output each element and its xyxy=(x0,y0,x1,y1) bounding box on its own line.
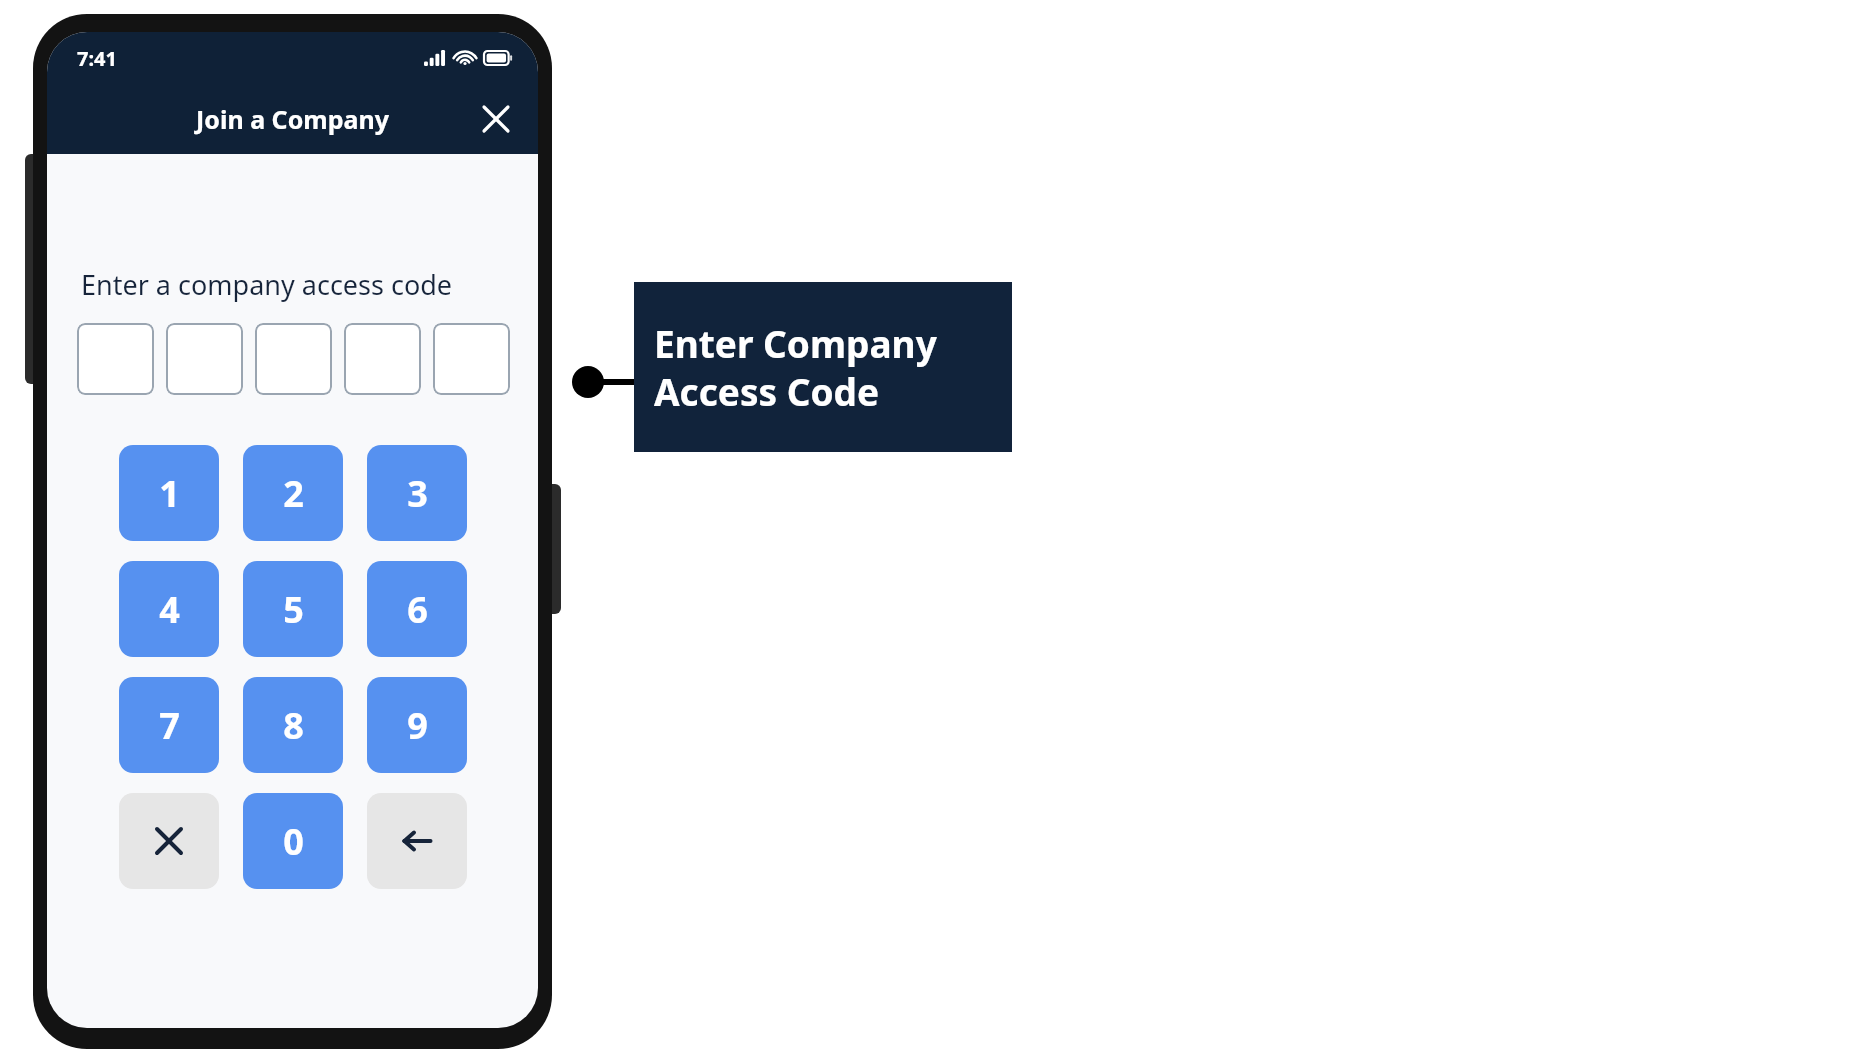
button[interactable]: 5 xyxy=(243,561,343,657)
button[interactable]: 4 xyxy=(119,561,219,657)
button[interactable]: Clear xyxy=(119,793,219,889)
button[interactable]: 3 xyxy=(367,445,467,541)
staticText: 5 xyxy=(283,585,304,634)
staticText: 0 xyxy=(283,817,304,866)
button[interactable]: Code digit 3 xyxy=(255,323,332,395)
staticText: 8 xyxy=(283,701,304,750)
button[interactable]: 2 xyxy=(243,445,343,541)
button[interactable]: 7 xyxy=(119,677,219,773)
staticText: 7 xyxy=(159,701,180,750)
staticText: 4 xyxy=(159,585,180,634)
staticText: 6 xyxy=(407,585,428,634)
staticText: 7:41 xyxy=(77,45,117,72)
button[interactable]: Code digit 5 xyxy=(433,323,510,395)
button[interactable]: 1 xyxy=(119,445,219,541)
button[interactable]: Code digit 4 xyxy=(344,323,421,395)
button[interactable]: Code digit 2 xyxy=(166,323,243,395)
button[interactable]: Backspace xyxy=(367,793,467,889)
staticText: Join a Company xyxy=(196,102,389,136)
staticText: Enter Company Access Code xyxy=(654,318,937,417)
button[interactable]: 9 xyxy=(367,677,467,773)
staticText: 9 xyxy=(407,701,428,750)
button[interactable]: 6 xyxy=(367,561,467,657)
button[interactable]: Code digit 1 xyxy=(77,323,154,395)
staticText: 3 xyxy=(407,469,428,518)
button[interactable]: 8 xyxy=(243,677,343,773)
button[interactable]: 0 xyxy=(243,793,343,889)
button[interactable]: Close xyxy=(474,97,518,141)
staticText: 1 xyxy=(159,469,180,518)
staticText: 2 xyxy=(283,469,304,518)
staticText: Enter a company access code xyxy=(81,266,538,303)
